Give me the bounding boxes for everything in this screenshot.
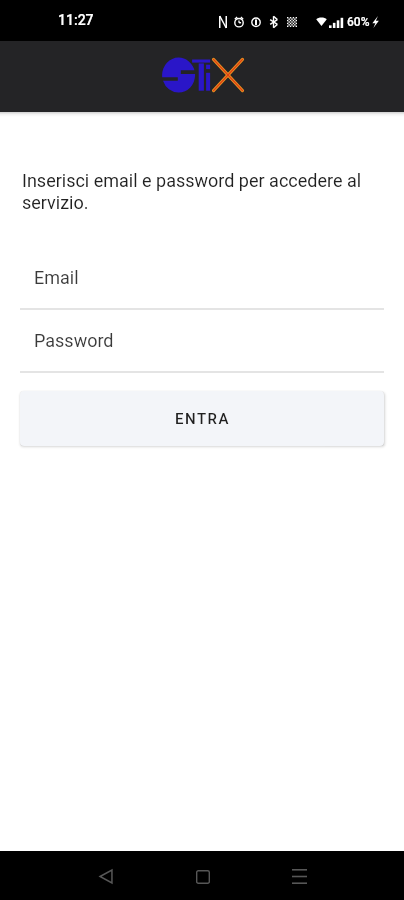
button[interactable]: Back xyxy=(74,851,138,900)
staticText: ENTRA xyxy=(175,410,230,428)
button[interactable]: ENTRA xyxy=(20,391,384,446)
button[interactable]: Email xyxy=(0,247,404,310)
staticText: Email xyxy=(34,267,79,288)
button[interactable]: Home xyxy=(171,851,235,900)
staticText: 11:27 xyxy=(58,12,94,28)
button[interactable]: Password xyxy=(0,310,404,373)
staticText: Password xyxy=(34,330,114,351)
staticText: 60% xyxy=(347,15,370,29)
button[interactable]: Recent apps xyxy=(267,851,331,900)
staticText: Inserisci email e password per accedere … xyxy=(22,170,378,214)
